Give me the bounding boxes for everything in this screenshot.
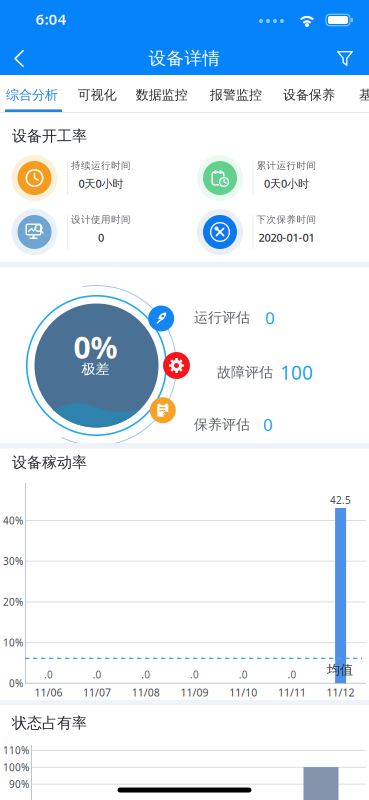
staticText: 0% [9, 676, 23, 690]
staticText: 基本信息 [359, 87, 369, 103]
staticText: 设备稼动率 [12, 453, 87, 472]
staticText: 11/12 [327, 685, 355, 700]
staticText: 11/07 [83, 685, 111, 700]
button[interactable]: Filter [337, 51, 353, 66]
staticText: 保养评估 [194, 416, 250, 433]
staticText: 30% [3, 554, 23, 568]
button[interactable]: 综合分析 [6, 87, 58, 103]
staticText: 数据监控 [136, 87, 188, 103]
staticText: 累计运行时间 [256, 159, 316, 171]
staticText: 90% [9, 777, 29, 791]
staticText: 11/08 [132, 685, 160, 700]
staticText: 可视化 [78, 87, 117, 103]
button[interactable]: 数据监控 [136, 87, 188, 103]
staticText: 0天0小时 [78, 176, 123, 191]
staticText: 运行评估 [194, 309, 250, 326]
staticText: 42.5 [330, 493, 351, 507]
staticText: 6:04 [35, 9, 66, 29]
staticText: 110% [3, 744, 29, 757]
staticText: 11/11 [278, 685, 306, 700]
staticText: 0天0小时 [264, 176, 309, 191]
staticText: 报警监控 [210, 87, 262, 103]
staticText: 0 [265, 306, 275, 329]
button[interactable]: 保养评估 [150, 397, 176, 423]
button[interactable]: 故障评估 [163, 352, 190, 379]
button[interactable]: 报警监控 [210, 87, 262, 103]
staticText: 20% [3, 595, 23, 609]
staticText: 0 [98, 230, 104, 245]
button[interactable]: 运行评估 [148, 305, 174, 331]
staticText: .0 [239, 668, 248, 681]
staticText: 10% [3, 636, 23, 649]
staticText: 设计使用时间 [71, 213, 131, 225]
staticText: 11/10 [229, 685, 257, 700]
staticText: 设备保养 [283, 87, 335, 103]
staticText: 40% [3, 514, 23, 527]
button[interactable]: 设备保养 [283, 87, 335, 103]
staticText: .0 [44, 668, 53, 681]
button[interactable]: 可视化 [78, 87, 117, 103]
staticText: 故障评估 [217, 364, 273, 381]
staticText: 设备开工率 [12, 127, 87, 145]
staticText: .0 [287, 668, 296, 681]
button[interactable]: 基本信息 [359, 87, 369, 103]
staticText: 极差 [81, 360, 109, 378]
staticText: .0 [141, 668, 150, 681]
staticText: 11/09 [180, 685, 208, 700]
staticText: 均值 [327, 662, 353, 678]
staticText: .0 [93, 668, 102, 681]
staticText: .0 [190, 668, 199, 681]
staticText: 0% [73, 327, 117, 367]
staticText: 11/06 [34, 685, 62, 700]
staticText: 2020-01-01 [258, 230, 314, 245]
staticText: 0 [263, 413, 273, 436]
staticText: 100% [3, 760, 29, 774]
staticText: 状态占有率 [12, 714, 87, 732]
staticText: 下次保养时间 [256, 213, 316, 225]
staticText: 持续运行时间 [71, 159, 131, 171]
staticText: 100 [280, 359, 313, 385]
button[interactable]: Back [13, 50, 25, 67]
staticText: 综合分析 [6, 87, 58, 103]
staticText: 设备详情 [148, 47, 220, 69]
